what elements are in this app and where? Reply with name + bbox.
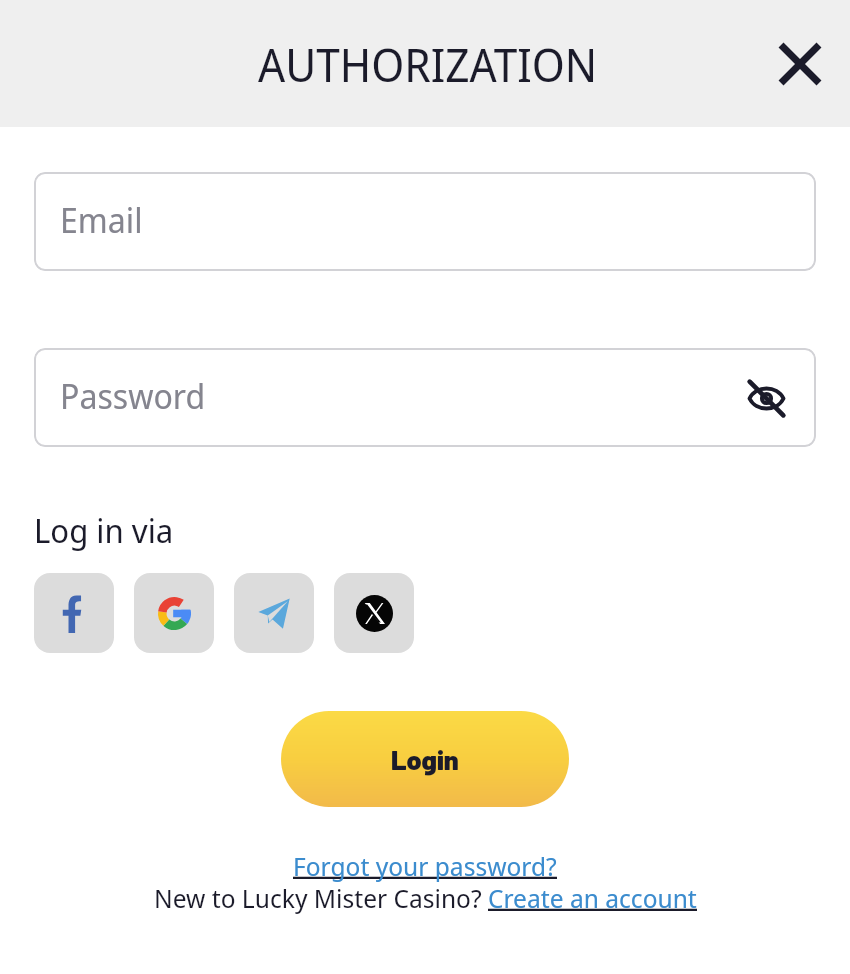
button[interactable]: Show password — [736, 368, 796, 428]
button[interactable]: Log in with Facebook — [34, 573, 114, 653]
staticText: Log in via — [34, 508, 174, 553]
staticText: AUTHORIZATION — [258, 34, 598, 95]
button[interactable]: Password — [34, 348, 816, 447]
button[interactable]: Close — [766, 30, 834, 98]
staticText: Login — [391, 743, 459, 775]
staticText: Email — [60, 197, 143, 243]
staticText: New to Lucky Mister Casino? — [154, 880, 488, 915]
button[interactable]: Email — [34, 172, 816, 271]
staticText: Password — [60, 373, 206, 419]
button[interactable]: Create an account — [488, 880, 697, 915]
button[interactable]: Login — [281, 711, 569, 807]
button[interactable]: Log in with X — [334, 573, 414, 653]
button[interactable]: Log in with Google — [134, 573, 214, 653]
button[interactable]: Log in with Telegram — [234, 573, 314, 653]
button[interactable]: Forgot your password? — [293, 848, 557, 883]
